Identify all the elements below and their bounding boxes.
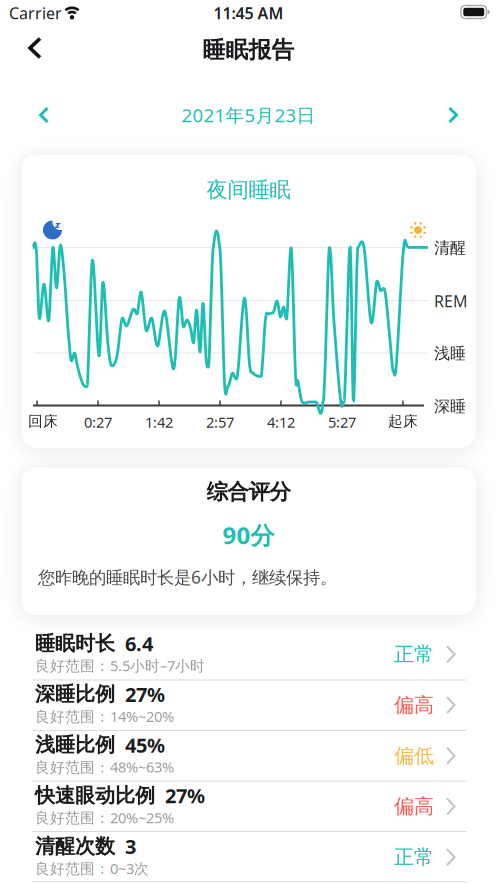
staticText: 浅睡比例 bbox=[35, 733, 115, 757]
staticText: 正常 bbox=[394, 642, 434, 667]
staticText: 3 bbox=[125, 833, 136, 860]
staticText: REM bbox=[434, 290, 468, 312]
staticText: 深睡 bbox=[434, 397, 466, 416]
staticText: 睡眠时长 bbox=[35, 631, 115, 656]
staticText: 6.4 bbox=[125, 630, 153, 657]
staticText: 11:45 AM bbox=[213, 2, 283, 24]
staticText: 偏低 bbox=[394, 743, 434, 768]
staticText: 起床 bbox=[388, 412, 418, 430]
staticText: 清醒 bbox=[434, 238, 466, 258]
staticText: 2:57 bbox=[206, 412, 234, 432]
staticText: 良好范围：5.5小时–7小时 bbox=[35, 656, 205, 675]
staticText: 4:12 bbox=[267, 412, 295, 432]
staticText: Carrier bbox=[9, 2, 62, 24]
staticText: 夜间睡眠 bbox=[206, 177, 290, 203]
staticText: 回床 bbox=[28, 412, 58, 430]
button[interactable] bbox=[34, 105, 54, 125]
staticText: 27% bbox=[165, 782, 205, 809]
staticText: 清醒次数 bbox=[35, 834, 115, 859]
staticText: 良好范围：14%~20% bbox=[35, 706, 174, 726]
staticText: 27% bbox=[125, 681, 165, 707]
staticText: 90分 bbox=[222, 519, 274, 551]
staticText: 深睡比例 bbox=[35, 682, 115, 706]
staticText: 正常 bbox=[394, 845, 434, 869]
staticText: 综合评分 bbox=[206, 479, 290, 505]
button[interactable] bbox=[443, 105, 463, 125]
button[interactable]: 浅睡比例 bbox=[0, 730, 497, 781]
staticText: 偏高 bbox=[394, 693, 434, 717]
staticText: 2021年5月23日 bbox=[181, 103, 315, 127]
staticText: 浅睡 bbox=[434, 344, 466, 363]
staticText: 5:27 bbox=[328, 412, 356, 432]
staticText: 良好范围：0~3次 bbox=[35, 859, 149, 878]
staticText: 您昨晚的睡眠时长是6小时，继续保持。 bbox=[38, 565, 337, 588]
button[interactable]: 深睡比例 bbox=[0, 680, 497, 730]
staticText: 良好范围：48%~63% bbox=[35, 757, 174, 777]
staticText: 1:42 bbox=[145, 412, 173, 432]
button[interactable]: 快速眼动比例 bbox=[0, 781, 497, 832]
staticText: 快速眼动比例 bbox=[35, 783, 155, 808]
staticText: 偏高 bbox=[394, 794, 434, 819]
staticText: 睡眠报告 bbox=[202, 36, 294, 64]
staticText: 0:27 bbox=[84, 412, 112, 432]
button[interactable]: 清醒次数 bbox=[0, 832, 497, 882]
staticText: 45% bbox=[125, 732, 165, 758]
staticText: 良好范围：20%~25% bbox=[35, 808, 174, 827]
button[interactable]: 睡眠时长 bbox=[0, 629, 497, 680]
button[interactable] bbox=[20, 32, 50, 63]
